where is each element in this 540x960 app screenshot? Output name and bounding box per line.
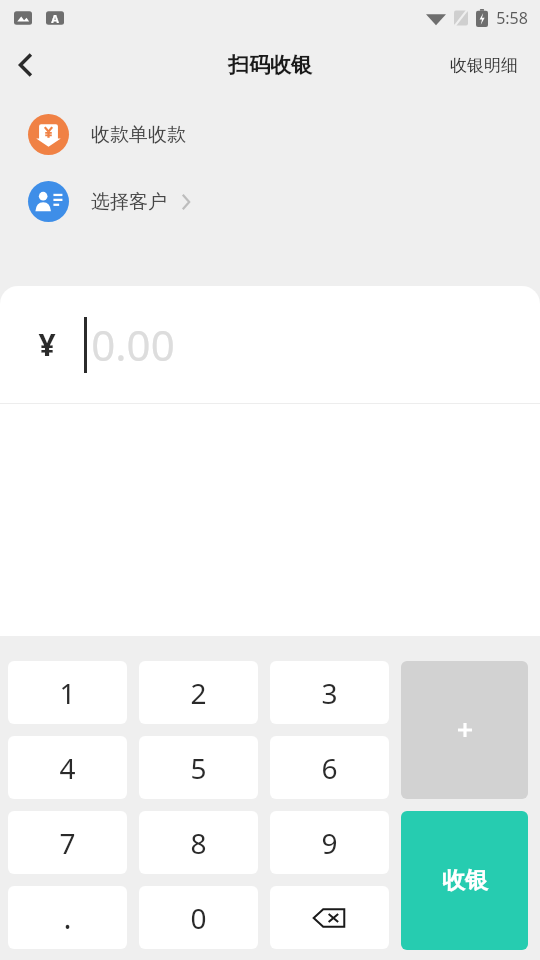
staticText: 收款单收款: [91, 123, 186, 147]
staticText: 扫码收银: [228, 52, 312, 78]
button[interactable]: 3: [270, 661, 389, 724]
staticText: 8: [190, 824, 207, 862]
staticText: 0: [190, 899, 207, 937]
button[interactable]: 收银明细: [428, 45, 540, 86]
staticText: 收银: [442, 866, 488, 895]
button[interactable]: 5: [139, 736, 258, 799]
button[interactable]: 2: [139, 661, 258, 724]
button[interactable]: 8: [139, 811, 258, 874]
staticText: 9: [321, 824, 338, 862]
button[interactable]: 9: [270, 811, 389, 874]
staticText: 5:58: [496, 7, 528, 29]
staticText: 选择客户: [91, 190, 167, 214]
button[interactable]: ¥: [0, 286, 540, 403]
button[interactable]: Backspace: [270, 886, 389, 949]
button[interactable]: 0: [139, 886, 258, 949]
staticText: 0.00: [91, 316, 175, 373]
button[interactable]: 7: [8, 811, 127, 874]
staticText: .: [63, 897, 72, 938]
staticText: 收银明细: [450, 55, 518, 76]
button[interactable]: Back: [0, 39, 52, 91]
staticText: A: [51, 11, 59, 26]
staticText: 5: [190, 749, 207, 787]
staticText: 7: [59, 824, 76, 862]
button[interactable]: 4: [8, 736, 127, 799]
staticText: 3: [321, 674, 338, 712]
button[interactable]: 收款单收款: [0, 110, 540, 159]
staticText: 2: [190, 674, 207, 712]
button[interactable]: 收银: [401, 811, 528, 950]
button[interactable]: 6: [270, 736, 389, 799]
staticText: 1: [59, 674, 76, 712]
button[interactable]: 1: [8, 661, 127, 724]
staticText: ¥: [38, 324, 56, 365]
button[interactable]: .: [8, 886, 127, 949]
staticText: 4: [59, 749, 76, 787]
button[interactable]: 选择客户: [0, 177, 540, 226]
staticText: 6: [321, 749, 338, 787]
